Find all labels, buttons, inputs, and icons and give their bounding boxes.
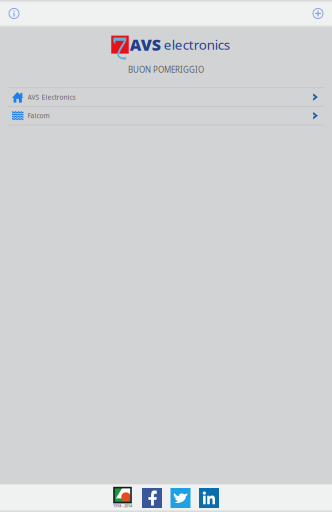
- staticText: BUON POMERIGGIO: [128, 64, 204, 75]
- button[interactable]: Twitter: [170, 488, 190, 508]
- staticText: AVS Electronics: [27, 93, 75, 101]
- staticText: electronics: [164, 36, 230, 53]
- button[interactable]: LinkedIn: [199, 488, 219, 508]
- button[interactable]: AVS Electronics: [0, 88, 332, 107]
- staticText: Falcom: [27, 111, 49, 120]
- staticText: 1974 - 2014: [113, 503, 132, 508]
- button[interactable]: 40 years 1974 - 2014: [113, 488, 133, 508]
- button[interactable]: Facebook: [142, 488, 162, 508]
- button[interactable]: Add: [306, 1, 330, 25]
- staticText: AVS: [130, 34, 161, 55]
- button[interactable]: Falcom: [0, 107, 332, 125]
- button[interactable]: Info: [2, 1, 26, 25]
